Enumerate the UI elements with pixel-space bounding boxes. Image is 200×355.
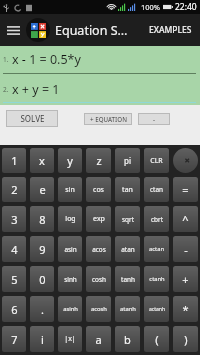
staticText: 0 — [39, 272, 46, 287]
staticText: 4 — [11, 242, 18, 257]
button[interactable]: i — [30, 326, 54, 352]
button[interactable]: + — [173, 266, 198, 292]
button[interactable]: acos — [86, 236, 111, 262]
button[interactable]: z — [86, 148, 111, 173]
staticText: x + y = 1 — [12, 81, 60, 98]
button[interactable]: y — [58, 148, 82, 173]
staticText: 1. — [3, 55, 9, 64]
button[interactable]: cosh — [86, 266, 111, 292]
staticText: ( — [155, 332, 159, 347]
button[interactable]: 8 — [30, 206, 54, 232]
staticText: * — [182, 302, 189, 317]
button[interactable]: tan — [115, 177, 140, 202]
staticText: b — [124, 332, 131, 347]
button[interactable]: 3 — [2, 206, 26, 232]
staticText: 3 — [11, 212, 18, 227]
staticText: 6 — [11, 302, 18, 317]
staticText: 7 — [11, 332, 18, 347]
staticText: atan — [121, 245, 135, 254]
button[interactable]: exp — [86, 206, 111, 232]
button[interactable]: asinh — [58, 296, 82, 322]
staticText: acos — [92, 245, 106, 254]
button[interactable]: log — [58, 206, 82, 232]
staticText: asinh — [63, 305, 78, 313]
button[interactable]: tanh — [115, 266, 140, 292]
staticText: log — [65, 214, 76, 224]
button[interactable]: b — [115, 326, 140, 352]
staticText: tanh — [121, 275, 135, 284]
button[interactable]: 1. — [0, 46, 200, 76]
staticText: EXAMPLES — [149, 24, 192, 36]
staticText: 1 — [11, 153, 18, 168]
button[interactable]: * — [173, 296, 198, 322]
staticText: SOLVE — [20, 113, 45, 124]
button[interactable]: pi — [115, 148, 140, 173]
button[interactable]: |x| — [58, 326, 82, 352]
button[interactable]: CLR — [144, 148, 169, 173]
staticText: e — [39, 182, 46, 197]
staticText: 22:40 — [175, 1, 197, 13]
button[interactable]: e — [30, 177, 54, 202]
staticText: - — [184, 242, 188, 257]
button[interactable]: Backspace — [173, 148, 198, 173]
button[interactable]: acosh — [86, 296, 111, 322]
button[interactable]: ) — [173, 326, 198, 352]
button[interactable]: sinh — [58, 266, 82, 292]
button[interactable]: asin — [58, 236, 82, 262]
button[interactable]: 2 — [2, 177, 26, 202]
staticText: = — [182, 182, 189, 197]
button[interactable]: 7 — [2, 326, 26, 352]
staticText: Equation S… — [55, 22, 128, 39]
staticText: . — [41, 302, 44, 317]
staticText: sin — [65, 185, 75, 195]
button[interactable]: 0 — [30, 266, 54, 292]
button[interactable]: actanh — [144, 296, 169, 322]
staticText: ) — [184, 332, 188, 347]
button[interactable]: EXAMPLES — [143, 17, 198, 43]
button[interactable]: 5 — [2, 266, 26, 292]
button[interactable]: 4 — [2, 236, 26, 262]
staticText: + — [182, 272, 189, 287]
staticText: sqrt — [122, 215, 134, 224]
button[interactable]: ( — [144, 326, 169, 352]
button[interactable]: atanh — [115, 296, 140, 322]
button[interactable]: ctan — [144, 177, 169, 202]
staticText: 2. — [3, 85, 9, 94]
button[interactable]: + EQUATION — [84, 113, 132, 125]
button[interactable]: = — [173, 177, 198, 202]
button[interactable]: ctanh — [144, 266, 169, 292]
staticText: sinh — [64, 275, 77, 284]
button[interactable]: actan — [144, 236, 169, 262]
button[interactable]: cbrt — [144, 206, 169, 232]
staticText: actanh — [149, 306, 165, 313]
button[interactable]: 6 — [2, 296, 26, 322]
staticText: ^ — [182, 212, 189, 227]
staticText: actan — [149, 245, 164, 253]
button[interactable]: 2. — [0, 76, 200, 105]
button[interactable]: - — [138, 113, 170, 125]
button[interactable]: a — [86, 326, 111, 352]
staticText: 8 — [39, 212, 46, 227]
staticText: 100% — [141, 2, 161, 12]
staticText: atanh — [120, 305, 136, 313]
button[interactable]: Open navigation menu — [0, 14, 26, 46]
button[interactable]: ^ — [173, 206, 198, 232]
button[interactable]: . — [30, 296, 54, 322]
button[interactable]: x — [30, 148, 54, 173]
button[interactable]: sin — [58, 177, 82, 202]
button[interactable]: atan — [115, 236, 140, 262]
button[interactable]: 9 — [30, 236, 54, 262]
button[interactable]: SOLVE — [6, 110, 58, 127]
button[interactable]: - — [173, 236, 198, 262]
staticText: - — [153, 115, 155, 123]
staticText: cbrt — [151, 215, 163, 224]
staticText: CLR — [150, 156, 163, 166]
staticText: a — [95, 332, 102, 347]
button[interactable]: sqrt — [115, 206, 140, 232]
staticText: 9 — [39, 242, 46, 257]
staticText: pi — [124, 155, 131, 166]
button[interactable]: cos — [86, 177, 111, 202]
button[interactable]: 1 — [2, 148, 26, 173]
staticText: z — [96, 153, 102, 168]
staticText: tan — [122, 185, 133, 195]
